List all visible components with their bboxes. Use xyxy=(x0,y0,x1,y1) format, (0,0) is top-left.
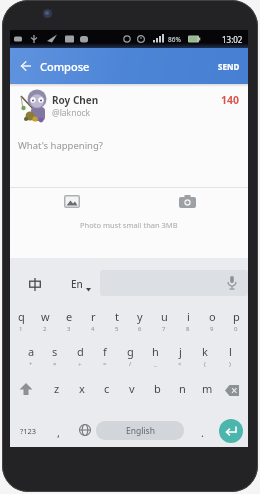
staticText: _ xyxy=(154,360,157,368)
button[interactable]: m xyxy=(196,377,218,399)
button[interactable]: x xyxy=(71,377,93,399)
staticText: a xyxy=(28,344,35,359)
staticText: . xyxy=(201,425,204,440)
staticText: b xyxy=(154,381,161,396)
staticText: 0 xyxy=(234,325,238,333)
staticText: p xyxy=(233,309,240,324)
staticText: ( xyxy=(204,360,206,368)
button[interactable]: o xyxy=(201,305,223,327)
button[interactable] xyxy=(14,54,38,78)
button[interactable] xyxy=(100,270,248,296)
button[interactable] xyxy=(74,418,96,442)
staticText: 1 xyxy=(19,325,23,333)
button[interactable]: c xyxy=(96,377,118,399)
button[interactable]: k xyxy=(194,340,216,362)
button[interactable]: v xyxy=(121,377,143,399)
staticText: + xyxy=(29,360,33,368)
button[interactable]: q xyxy=(10,305,32,327)
staticText: / xyxy=(129,360,132,368)
button[interactable] xyxy=(219,419,243,443)
staticText: t xyxy=(115,309,119,324)
staticText: 140 xyxy=(221,93,240,107)
button[interactable] xyxy=(62,192,82,210)
staticText: h xyxy=(152,344,159,359)
staticText: , xyxy=(57,425,60,440)
staticText: @laknock xyxy=(52,107,91,119)
button[interactable] xyxy=(12,377,40,403)
button[interactable]: f xyxy=(94,340,116,362)
staticText: w xyxy=(41,309,50,324)
button[interactable]: s xyxy=(44,340,66,362)
staticText: z xyxy=(54,381,60,396)
staticText: 6 xyxy=(138,325,142,333)
staticText: x xyxy=(79,381,85,396)
staticText: 86% xyxy=(168,35,181,44)
staticText: 8 xyxy=(186,325,190,333)
button[interactable]: t xyxy=(106,305,128,327)
button[interactable]: . xyxy=(194,421,210,443)
staticText: f xyxy=(103,344,107,359)
button[interactable]: w xyxy=(34,305,56,327)
staticText: 13:02 xyxy=(222,34,243,45)
button[interactable]: e xyxy=(58,305,80,327)
staticText: 7 xyxy=(162,325,166,333)
staticText: En xyxy=(71,277,83,291)
button[interactable]: SEND xyxy=(214,55,244,77)
button[interactable]: ?123 xyxy=(13,420,43,442)
button[interactable]: p xyxy=(225,305,247,327)
button[interactable]: What's happening? xyxy=(18,138,198,152)
staticText: v xyxy=(129,381,135,396)
button[interactable] xyxy=(177,192,197,210)
button[interactable]: En xyxy=(62,271,92,297)
button[interactable] xyxy=(220,270,244,296)
staticText: g xyxy=(127,344,134,359)
staticText: English xyxy=(126,425,155,437)
staticText: n xyxy=(179,381,186,396)
staticText: o xyxy=(209,309,216,324)
button[interactable]: l xyxy=(219,340,241,362)
staticText: 9 xyxy=(210,325,214,333)
staticText: l xyxy=(229,344,232,359)
staticText: i xyxy=(187,309,190,324)
button[interactable]: y xyxy=(129,305,151,327)
staticText: r xyxy=(91,309,96,324)
button[interactable]: z xyxy=(46,377,68,399)
staticText: = xyxy=(103,360,107,368)
staticText: Photo must small than 3MB xyxy=(80,220,178,230)
staticText: m xyxy=(202,381,213,396)
staticText: SEND xyxy=(218,61,240,72)
staticText: Compose xyxy=(40,59,90,74)
button[interactable] xyxy=(219,377,247,403)
button[interactable]: u xyxy=(153,305,175,327)
staticText: s xyxy=(52,344,58,359)
button[interactable]: d xyxy=(69,340,91,362)
staticText: 3 xyxy=(67,325,71,333)
staticText: k xyxy=(202,344,208,359)
button[interactable]: g xyxy=(119,340,141,362)
staticText: ÷ xyxy=(78,360,82,368)
button[interactable]: j xyxy=(169,340,191,362)
button[interactable]: h xyxy=(144,340,166,362)
staticText: c xyxy=(104,381,110,396)
staticText: < xyxy=(178,360,182,368)
staticText: q xyxy=(18,309,25,324)
staticText: What's happening? xyxy=(18,139,103,152)
staticText: j xyxy=(179,344,182,359)
staticText: × xyxy=(53,360,57,368)
staticText: e xyxy=(66,309,73,324)
staticText: 5 xyxy=(115,325,119,333)
button[interactable]: n xyxy=(171,377,193,399)
staticText: u xyxy=(161,309,168,324)
button[interactable]: English xyxy=(96,421,184,440)
button[interactable] xyxy=(22,271,48,297)
button[interactable]: i xyxy=(177,305,199,327)
staticText: ) xyxy=(229,360,231,368)
button[interactable]: r xyxy=(82,305,104,327)
staticText: 4 xyxy=(91,325,95,333)
button[interactable]: , xyxy=(50,421,66,443)
staticText: ?123 xyxy=(20,426,37,436)
staticText: 2 xyxy=(43,325,47,333)
button[interactable]: b xyxy=(146,377,168,399)
staticText: d xyxy=(77,344,84,359)
button[interactable]: a xyxy=(20,340,42,362)
